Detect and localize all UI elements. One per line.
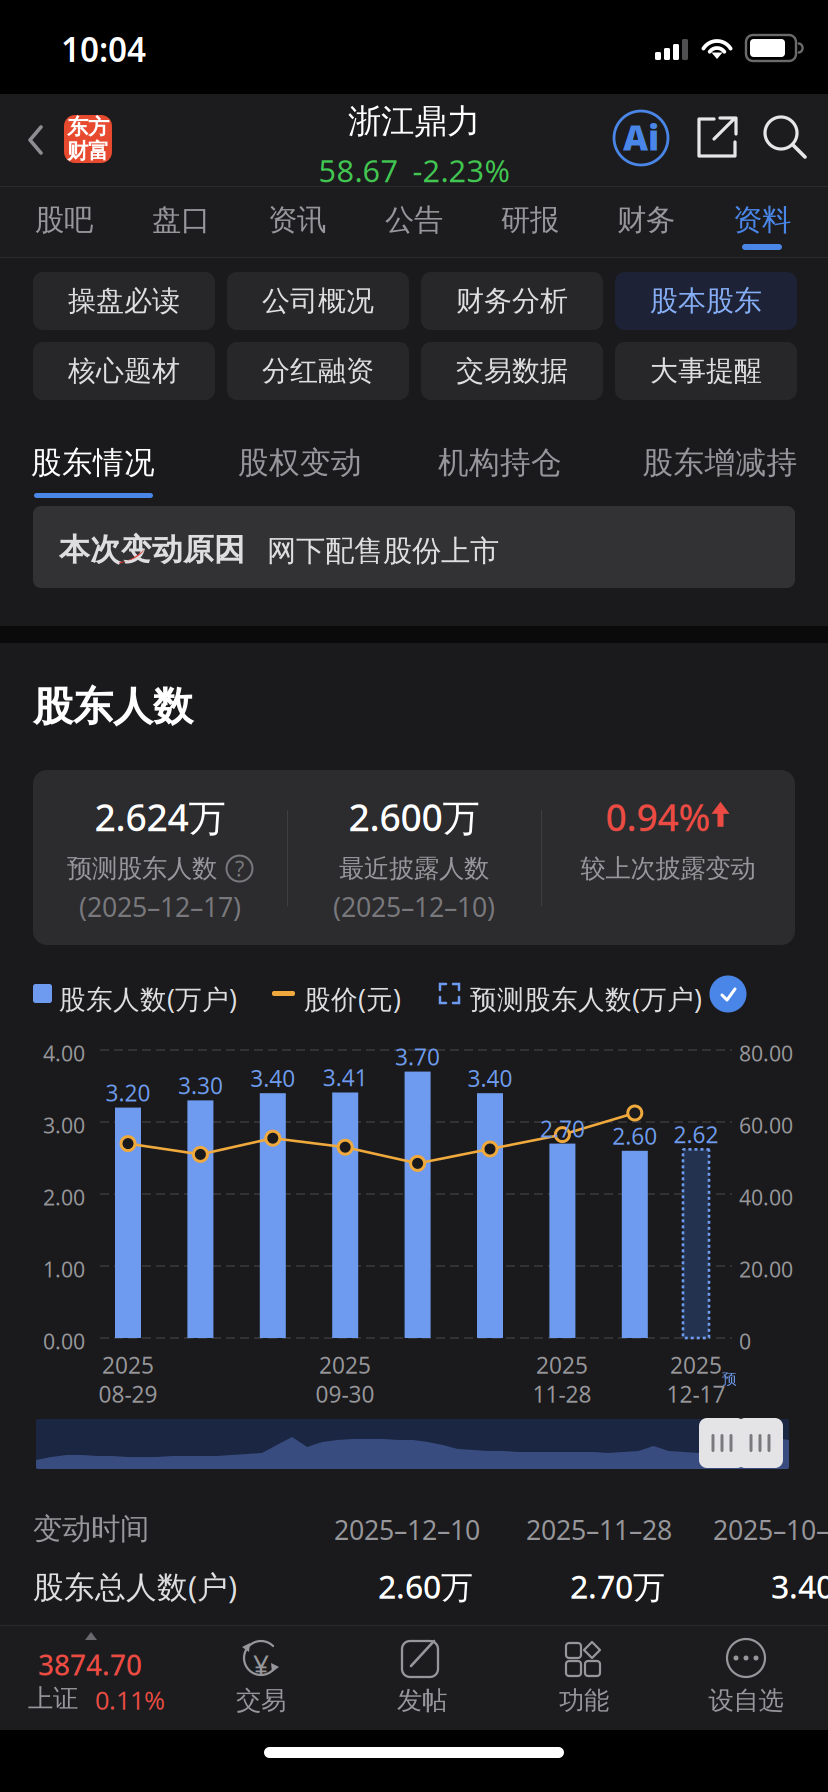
button[interactable]: 3874.70 xyxy=(0,1626,200,1732)
staticText: 预测股东人数 xyxy=(67,853,217,884)
staticText: 2.600万 xyxy=(348,792,479,842)
button[interactable]: 交易数据 xyxy=(421,342,603,400)
button[interactable]: 机构持仓 xyxy=(400,428,600,490)
button[interactable]: 设自选 xyxy=(676,1626,816,1732)
staticText: 本次变动原因 xyxy=(59,531,245,569)
staticText: 交易数据 xyxy=(456,354,568,388)
staticText: 2025 xyxy=(536,1350,588,1380)
staticText: 3.40 xyxy=(771,1565,828,1607)
staticText: 3.40 xyxy=(467,1063,512,1093)
staticText: 2.62 xyxy=(673,1119,718,1149)
staticText: 10:04 xyxy=(61,27,146,71)
button[interactable]: 财务 xyxy=(588,187,704,257)
staticText: 变动时间 xyxy=(33,1511,149,1547)
button[interactable]: 研报 xyxy=(472,187,588,257)
staticText: 12-17 xyxy=(666,1379,725,1409)
staticText: 东方 xyxy=(67,114,109,140)
button[interactable]: 本次变动原因 xyxy=(33,506,795,588)
staticText: 股东人数 xyxy=(33,682,193,731)
staticText: 预 xyxy=(722,1370,737,1388)
button[interactable]: 股本股东 xyxy=(615,272,797,330)
button[interactable]: ¥ xyxy=(191,1626,331,1732)
button[interactable]: 股东情况 xyxy=(0,428,193,490)
staticText: 大事提醒 xyxy=(650,354,762,388)
staticText: 3.20 xyxy=(105,1078,150,1108)
staticText: 2025 xyxy=(102,1350,154,1380)
button[interactable]: 核心题材 xyxy=(33,342,215,400)
staticText: 2025 xyxy=(319,1350,371,1380)
staticText: 0 xyxy=(739,1327,751,1355)
staticText: 股本股东 xyxy=(650,284,762,318)
staticText: 4.00 xyxy=(43,1039,85,1067)
button[interactable]: 分红融资 xyxy=(227,342,409,400)
staticText: 08-29 xyxy=(98,1379,157,1409)
staticText: 最近披露人数 xyxy=(339,853,489,884)
staticText: 11-28 xyxy=(532,1379,591,1409)
button[interactable]: 范围终点 xyxy=(737,1418,783,1468)
staticText: 3.70 xyxy=(395,1042,440,1072)
staticText: 核心题材 xyxy=(68,354,180,388)
button[interactable]: 范围起点 xyxy=(699,1418,745,1468)
staticText: 研报 xyxy=(501,202,559,238)
button[interactable]: 公告 xyxy=(356,187,472,257)
staticText: ¥ xyxy=(253,1646,269,1683)
button[interactable]: 预测股东人数(万户) xyxy=(440,972,680,1018)
staticText: 0.11% xyxy=(95,1683,165,1717)
button[interactable]: 分享 xyxy=(696,116,740,162)
staticText: 2.70 xyxy=(540,1114,585,1144)
staticText: 0.00 xyxy=(43,1327,85,1355)
button[interactable]: 股权变动 xyxy=(200,428,400,490)
staticText: 3.41 xyxy=(323,1062,368,1093)
button[interactable]: 公司概况 xyxy=(227,272,409,330)
staticText: 预测股东人数(万户) xyxy=(470,981,702,1016)
staticText: 3874.70 xyxy=(38,1646,142,1683)
staticText: 0.94% xyxy=(605,792,710,842)
staticText: 资料 xyxy=(733,202,791,238)
staticText: 分红融资 xyxy=(262,354,374,388)
button[interactable]: 股价(元) xyxy=(272,972,402,1018)
staticText: 股东情况 xyxy=(31,444,155,482)
button[interactable]: 发帖 xyxy=(352,1626,492,1732)
button[interactable]: 功能 xyxy=(514,1626,654,1732)
staticText: 1.00 xyxy=(43,1255,85,1283)
staticText: 2.624万 xyxy=(94,792,225,842)
staticText: 40.00 xyxy=(739,1183,793,1211)
staticText: 09-30 xyxy=(315,1379,374,1409)
staticText: (2025–12–17) xyxy=(79,889,241,924)
button[interactable]: 大事提醒 xyxy=(615,342,797,400)
button[interactable]: 财务分析 xyxy=(421,272,603,330)
staticText: 操盘必读 xyxy=(68,284,180,318)
button[interactable]: 返回 xyxy=(0,94,142,186)
staticText: 2025–11–28 xyxy=(526,1512,672,1547)
button[interactable]: 资讯 xyxy=(239,187,355,257)
staticText: 公司概况 xyxy=(262,284,374,318)
staticText: ? xyxy=(235,854,244,883)
staticText: -2.23% xyxy=(412,150,509,191)
staticText: 财务 xyxy=(617,202,675,238)
button[interactable]: 股东人数(万户) xyxy=(33,972,223,1018)
button[interactable]: 搜索 xyxy=(764,115,808,159)
staticText: 财务分析 xyxy=(456,284,568,318)
button[interactable]: 显示预测股东人数 xyxy=(709,975,747,1013)
button[interactable]: 盘口 xyxy=(123,187,239,257)
button[interactable]: 股吧 xyxy=(6,187,122,257)
staticText: 58.67 xyxy=(318,150,398,191)
button[interactable]: 股东增减持 xyxy=(620,428,820,490)
staticText: 2025–10– xyxy=(713,1512,828,1547)
staticText: 发帖 xyxy=(397,1685,447,1716)
button[interactable]: 资料 xyxy=(704,187,820,257)
button[interactable]: 操盘必读 xyxy=(33,272,215,330)
staticText: 资讯 xyxy=(268,202,326,238)
staticText: 股东增减持 xyxy=(642,444,797,482)
button[interactable]: AI 助手 xyxy=(613,110,669,166)
staticText: 股吧 xyxy=(35,202,93,238)
staticText: 2025 xyxy=(670,1350,722,1380)
staticText: (2025–12–10) xyxy=(333,889,495,924)
staticText: 3.00 xyxy=(43,1111,85,1139)
staticText: 机构持仓 xyxy=(438,444,562,482)
staticText: 股东人数(万户) xyxy=(59,981,237,1016)
staticText: 盘口 xyxy=(152,202,210,238)
staticText: 80.00 xyxy=(739,1039,793,1067)
staticText: 财富 xyxy=(67,138,109,164)
staticText: 3.40 xyxy=(250,1063,295,1093)
